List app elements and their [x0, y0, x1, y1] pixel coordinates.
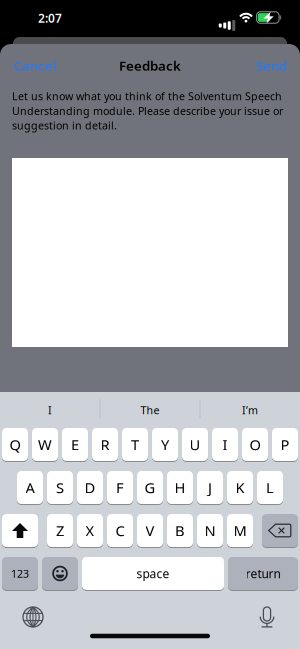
- button[interactable]: Y: [152, 428, 178, 461]
- staticText: W: [38, 435, 52, 454]
- staticText: E: [71, 435, 79, 454]
- staticText: suggestion in detail.: [12, 118, 117, 132]
- button[interactable]: R: [92, 428, 118, 461]
- button[interactable]: [42, 557, 78, 590]
- button[interactable]: The: [100, 392, 200, 428]
- staticText: Send: [256, 57, 287, 74]
- button[interactable]: V: [137, 514, 163, 547]
- button[interactable]: O: [242, 428, 268, 461]
- button[interactable]: P: [272, 428, 298, 461]
- button[interactable]: L: [257, 471, 283, 504]
- button[interactable]: T: [122, 428, 148, 461]
- staticText: Z: [56, 521, 64, 540]
- staticText: The: [140, 403, 159, 417]
- button[interactable]: [2, 514, 38, 547]
- staticText: C: [115, 521, 124, 540]
- button[interactable]: [258, 606, 276, 628]
- staticText: I: [222, 435, 227, 454]
- staticText: V: [145, 521, 154, 540]
- button[interactable]: G: [137, 471, 163, 504]
- staticText: 123: [11, 566, 29, 581]
- button[interactable]: U: [182, 428, 208, 461]
- button[interactable]: S: [47, 471, 73, 504]
- button[interactable]: I: [212, 428, 238, 461]
- button[interactable]: D: [77, 471, 103, 504]
- button[interactable]: E: [62, 428, 88, 461]
- staticText: Q: [9, 435, 20, 454]
- staticText: L: [266, 478, 274, 497]
- staticText: Understanding module. Please describe yo…: [12, 104, 283, 118]
- staticText: A: [25, 478, 34, 497]
- staticText: N: [204, 521, 215, 540]
- staticText: Let us know what you think of the Solven…: [12, 89, 282, 103]
- staticText: I: [48, 403, 52, 417]
- staticText: M: [233, 521, 246, 540]
- staticText: R: [100, 435, 109, 454]
- button[interactable]: I: [0, 392, 100, 428]
- button[interactable]: A: [17, 471, 43, 504]
- staticText: T: [131, 435, 139, 454]
- staticText: S: [56, 478, 64, 497]
- button[interactable]: Cancel: [14, 57, 57, 74]
- button[interactable]: I’m: [200, 392, 300, 428]
- button[interactable]: J: [197, 471, 223, 504]
- staticText: K: [235, 478, 244, 497]
- staticText: return: [245, 565, 280, 581]
- staticText: Cancel: [14, 57, 57, 74]
- button[interactable]: N: [197, 514, 223, 547]
- staticText: G: [144, 478, 155, 497]
- button[interactable]: W: [32, 428, 58, 461]
- staticText: Feedback: [119, 57, 181, 74]
- button[interactable]: F: [107, 471, 133, 504]
- button[interactable]: H: [167, 471, 193, 504]
- button[interactable]: Q: [2, 428, 28, 461]
- button[interactable]: 123: [2, 557, 38, 590]
- staticText: Y: [161, 435, 169, 454]
- staticText: F: [116, 478, 124, 497]
- button[interactable]: [262, 514, 298, 547]
- button[interactable]: M: [227, 514, 253, 547]
- staticText: O: [249, 435, 260, 454]
- button[interactable]: X: [77, 514, 103, 547]
- button[interactable]: space: [82, 557, 224, 590]
- staticText: B: [175, 521, 185, 540]
- staticText: I’m: [242, 403, 258, 417]
- button[interactable]: K: [227, 471, 253, 504]
- staticText: U: [189, 435, 200, 454]
- staticText: space: [136, 565, 169, 581]
- button[interactable]: Z: [47, 514, 73, 547]
- staticText: P: [280, 435, 289, 454]
- staticText: J: [208, 478, 212, 497]
- button[interactable]: [22, 606, 44, 628]
- staticText: D: [84, 478, 95, 497]
- button[interactable]: B: [167, 514, 193, 547]
- staticText: 2:07: [38, 10, 62, 26]
- button[interactable]: C: [107, 514, 133, 547]
- button[interactable]: return: [228, 557, 298, 590]
- staticText: X: [85, 521, 94, 540]
- button[interactable]: Send: [256, 57, 287, 74]
- staticText: H: [174, 478, 185, 497]
